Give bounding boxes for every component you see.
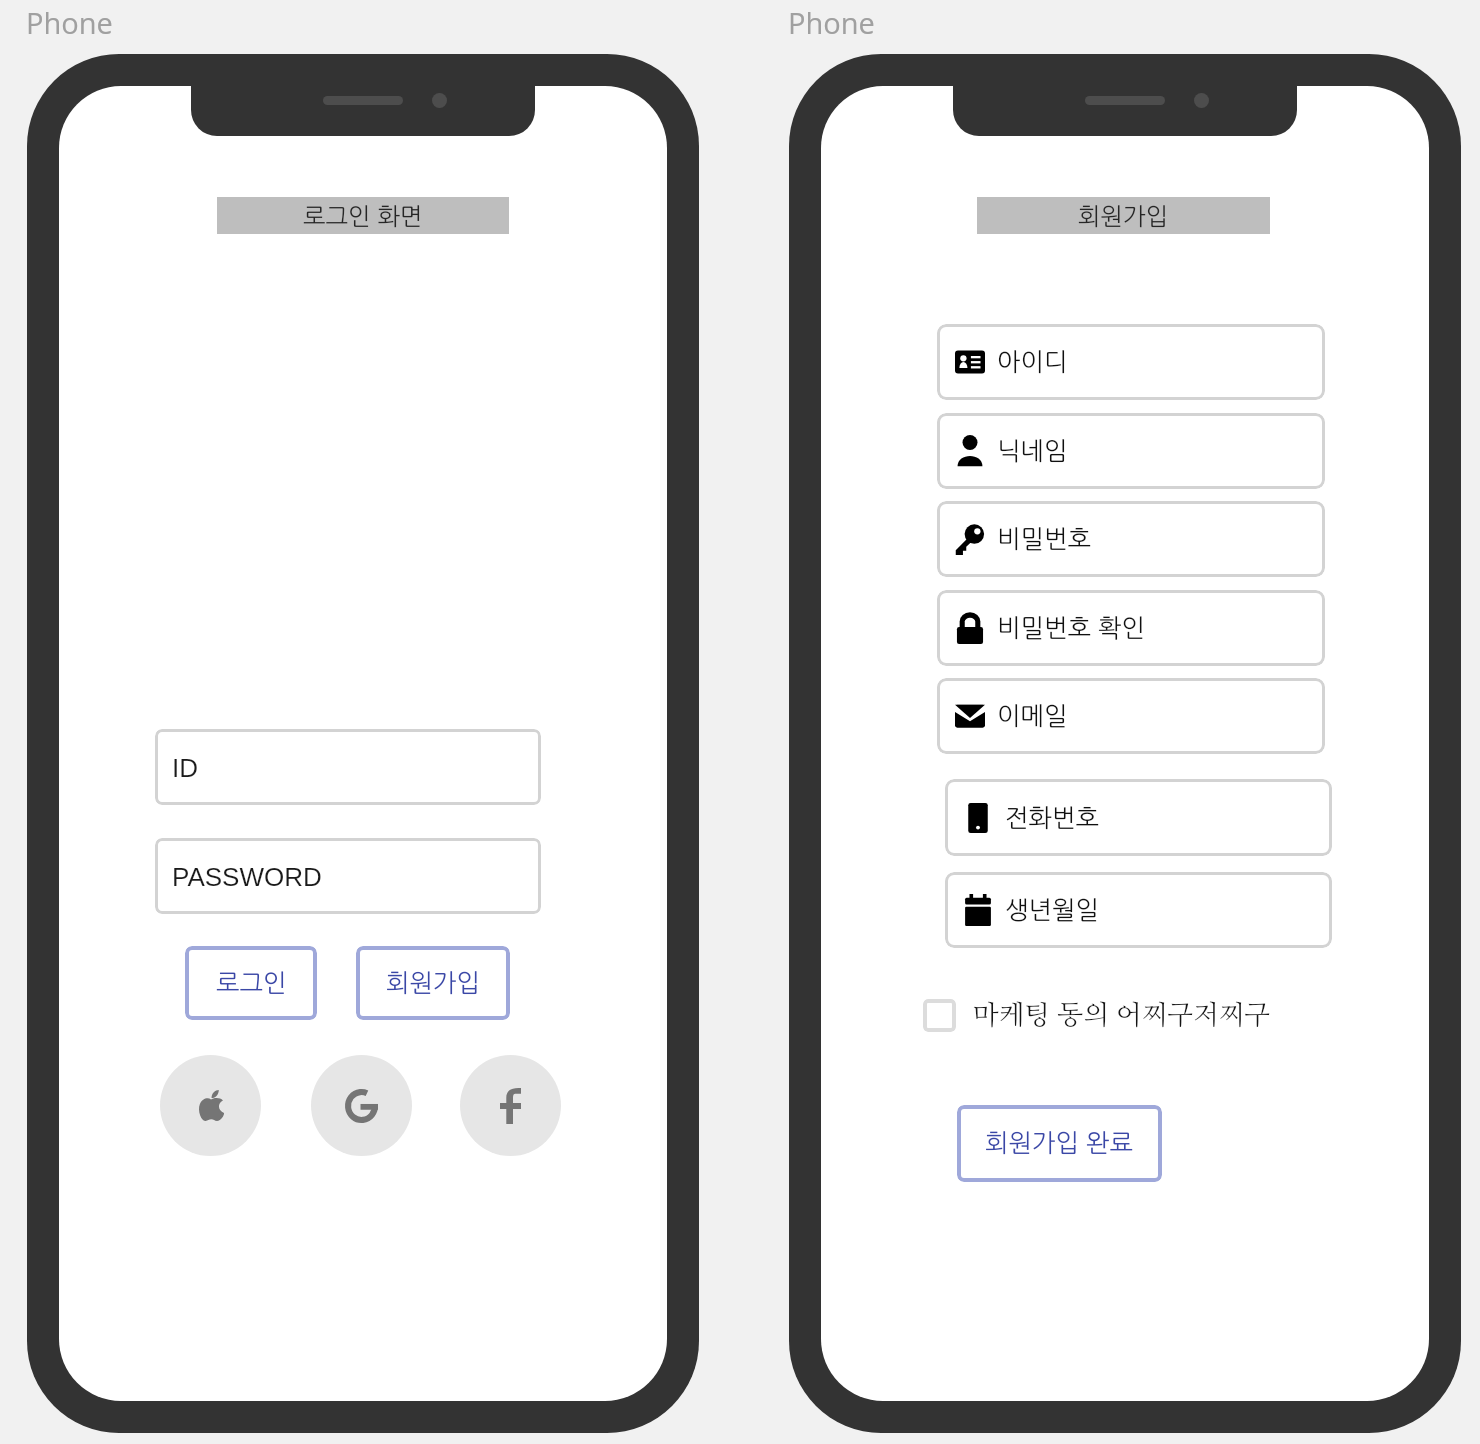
- button[interactable]: 회원가입 완료: [957, 1105, 1162, 1182]
- staticText: 아이디: [997, 350, 1068, 375]
- button[interactable]: 아이디: [937, 324, 1325, 400]
- staticText: 전화번호: [1005, 806, 1100, 831]
- button[interactable]: 비밀번호 확인: [937, 590, 1325, 666]
- staticText: ID: [172, 753, 198, 782]
- staticText: 생년월일: [1005, 898, 1100, 923]
- button[interactable]: 생년월일: [945, 872, 1332, 948]
- button[interactable]: Sign in with Google: [311, 1055, 412, 1156]
- button[interactable]: 전화번호: [945, 779, 1332, 856]
- button[interactable]: 회원가입: [356, 946, 510, 1020]
- button[interactable]: 닉네임: [937, 413, 1325, 489]
- staticText: 비밀번호 확인: [997, 616, 1146, 641]
- button[interactable]: 비밀번호: [937, 501, 1325, 577]
- staticText: 닉네임: [997, 439, 1068, 464]
- staticText: 로그인: [216, 971, 287, 996]
- button[interactable]: PASSWORD: [155, 838, 541, 914]
- button[interactable]: 로그인: [185, 946, 317, 1020]
- button[interactable]: ID: [155, 729, 541, 805]
- button[interactable]: 이메일: [937, 678, 1325, 754]
- staticText: 이메일: [997, 704, 1068, 729]
- staticText: 회원가입 완료: [985, 1131, 1134, 1156]
- staticText: 비밀번호: [997, 527, 1092, 552]
- staticText: Phone: [788, 3, 875, 42]
- button[interactable]: 마케팅 동의 어찌구저찌구: [923, 995, 1270, 1035]
- staticText: Phone: [26, 3, 113, 42]
- button[interactable]: Sign in with Facebook: [460, 1055, 561, 1156]
- staticText: PASSWORD: [172, 862, 322, 891]
- staticText: 회원가입: [386, 971, 481, 996]
- staticText: 마케팅 동의 어찌구저찌구: [973, 1002, 1270, 1029]
- button[interactable]: Sign in with Apple: [160, 1055, 261, 1156]
- staticText: 로그인 화면: [303, 204, 423, 228]
- staticText: 회원가입: [1078, 204, 1169, 228]
